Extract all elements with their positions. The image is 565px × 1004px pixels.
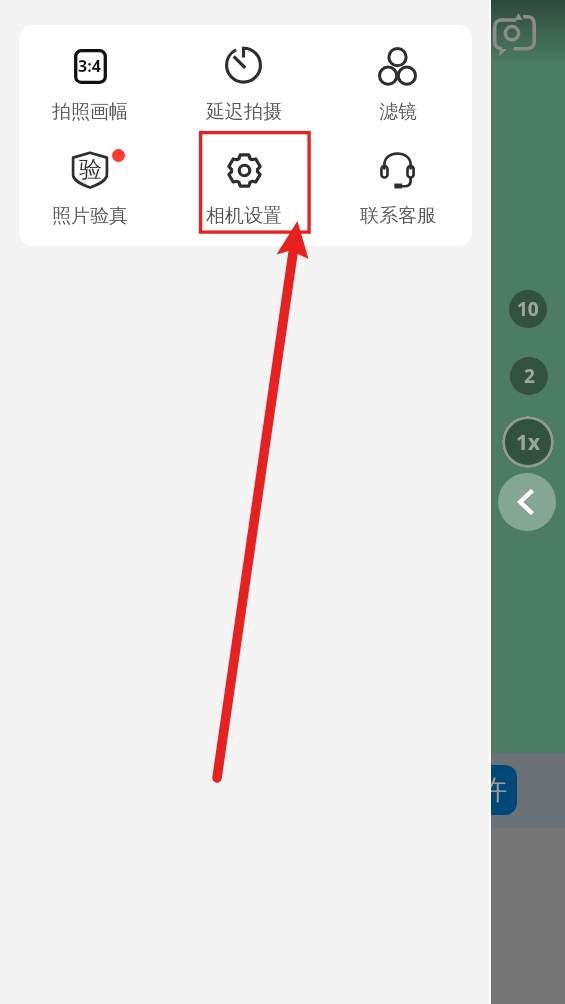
staticText: 2 <box>524 363 535 389</box>
button[interactable]: 相机设置 <box>167 129 321 228</box>
button[interactable]: 延迟拍摄 <box>167 25 321 124</box>
staticText: 3:4 <box>78 55 101 77</box>
staticText: 相机设置 <box>206 204 282 228</box>
button[interactable]: 允许 <box>491 765 517 815</box>
staticText: 照片验真 <box>52 204 128 228</box>
button[interactable]: 1x <box>502 416 554 468</box>
staticText: 验 <box>79 155 102 184</box>
button[interactable]: 滤镜 <box>321 25 472 124</box>
staticText: 延迟拍摄 <box>206 100 282 124</box>
staticText: 10 <box>517 296 539 322</box>
button[interactable]: 3:4 <box>19 25 167 124</box>
staticText: 拍照画幅 <box>52 100 128 124</box>
staticText: 允许 <box>491 773 507 807</box>
button[interactable]: Back <box>498 473 556 531</box>
staticText: 滤镜 <box>379 100 417 124</box>
button[interactable]: 验 <box>19 129 167 228</box>
button[interactable]: 10 <box>509 290 547 328</box>
staticText: 联系客服 <box>360 204 436 228</box>
button[interactable]: Switch camera <box>492 12 536 56</box>
button[interactable]: 联系客服 <box>321 129 472 228</box>
button[interactable]: 2 <box>510 357 548 395</box>
staticText: 1x <box>516 428 541 457</box>
